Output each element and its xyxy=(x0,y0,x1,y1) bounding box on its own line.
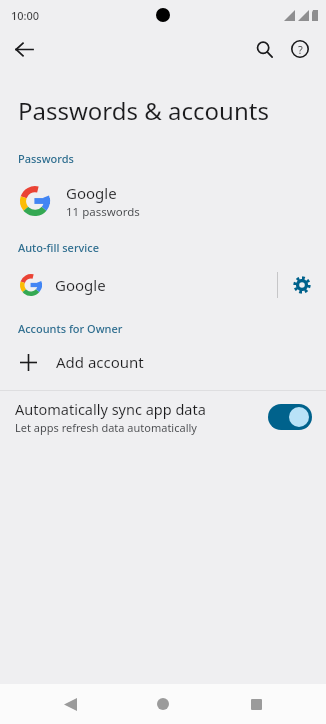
button[interactable]: Search xyxy=(246,31,282,67)
button[interactable]: Google xyxy=(0,178,326,224)
button[interactable] xyxy=(268,404,312,430)
staticText: 11 passwords xyxy=(66,204,140,220)
staticText: Accounts for Owner xyxy=(18,321,123,336)
button[interactable]: Back xyxy=(6,31,42,67)
staticText: Passwords & accounts xyxy=(18,94,269,127)
staticText: Automatically sync app data xyxy=(15,399,206,419)
button[interactable]: Back xyxy=(47,684,93,724)
button[interactable]: Automatically sync app data xyxy=(0,391,326,443)
staticText: Let apps refresh data automatically xyxy=(15,420,197,435)
staticText: Add account xyxy=(56,352,144,372)
staticText: Google xyxy=(55,275,106,295)
button[interactable]: Home xyxy=(140,684,186,724)
staticText: ? xyxy=(298,42,303,57)
staticText: 10:00 xyxy=(11,8,40,23)
button[interactable]: Autofill settings xyxy=(278,263,326,307)
staticText: Google xyxy=(66,183,117,203)
staticText: Passwords xyxy=(18,151,74,166)
button[interactable]: Google xyxy=(0,263,277,307)
button[interactable]: Recents xyxy=(233,684,279,724)
button[interactable]: Add account xyxy=(0,342,326,382)
button[interactable]: Help xyxy=(282,31,318,67)
staticText: Auto-fill service xyxy=(18,240,100,255)
